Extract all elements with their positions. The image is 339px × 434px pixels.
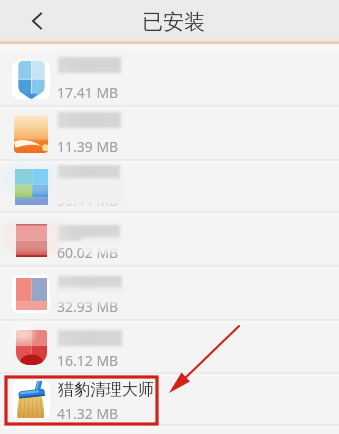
button[interactable]: 11.39 MB — [0, 107, 339, 161]
staticText: 32.93 MB — [57, 297, 119, 316]
button[interactable]: Back — [22, 6, 52, 36]
staticText: 58.44 MB — [57, 191, 119, 210]
staticText: 16.12 MB — [57, 351, 119, 370]
button[interactable]: 60.02 MB — [0, 213, 339, 267]
staticText: 11.39 MB — [57, 137, 119, 156]
button[interactable]: 猎豹清理大师 — [0, 374, 339, 426]
staticText: 41.32 MB — [57, 404, 119, 423]
staticText: 60.02 MB — [57, 243, 119, 262]
staticText: 17.41 MB — [57, 83, 119, 102]
button[interactable]: 32.93 MB — [0, 267, 339, 321]
staticText: 已安装 — [142, 9, 205, 35]
button[interactable]: 17.41 MB — [0, 53, 339, 107]
staticText: 猎豹清理大师 — [58, 380, 154, 400]
button[interactable]: 58.44 MB — [0, 161, 339, 213]
button[interactable]: 16.12 MB — [0, 321, 339, 374]
